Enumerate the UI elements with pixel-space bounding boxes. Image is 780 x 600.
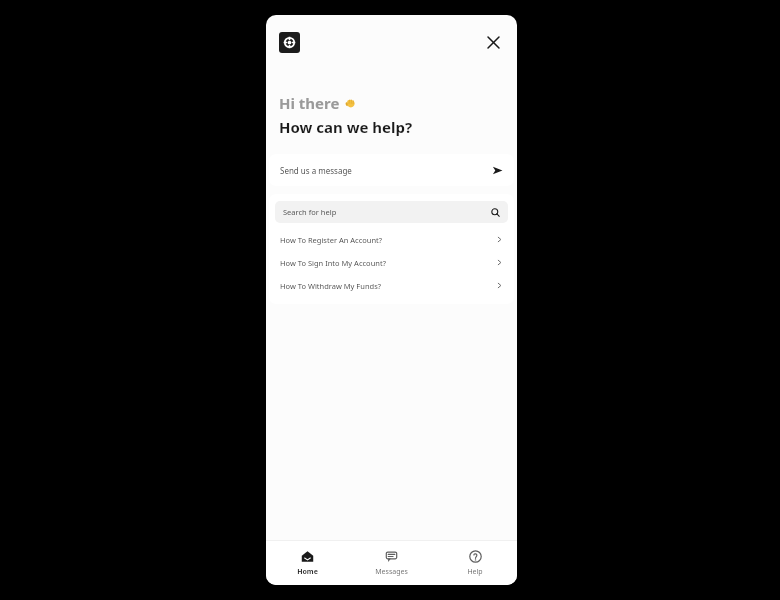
staticText: How can we help? bbox=[279, 117, 413, 137]
staticText: Hi there bbox=[279, 93, 344, 113]
staticText: Search for help bbox=[283, 207, 491, 217]
button[interactable]: Brand logo bbox=[279, 32, 300, 53]
staticText: How To Register An Account? bbox=[280, 235, 496, 245]
button[interactable]: Search for help bbox=[275, 201, 508, 223]
button[interactable]: Messages bbox=[349, 546, 433, 581]
staticText: Help bbox=[467, 567, 483, 577]
button[interactable]: Home bbox=[266, 546, 349, 581]
button[interactable]: How To Withdraw My Funds? bbox=[269, 274, 514, 297]
staticText: Messages bbox=[375, 567, 408, 577]
button[interactable]: Close bbox=[481, 30, 505, 54]
staticText: Send us a message bbox=[280, 165, 492, 176]
button[interactable]: Help bbox=[433, 546, 517, 581]
button[interactable]: How To Sign Into My Account? bbox=[269, 251, 514, 274]
staticText: Home bbox=[297, 567, 318, 577]
button[interactable]: How To Register An Account? bbox=[269, 228, 514, 251]
staticText: How To Sign Into My Account? bbox=[280, 258, 496, 268]
staticText: How To Withdraw My Funds? bbox=[280, 281, 496, 291]
button[interactable]: Send us a message bbox=[269, 154, 514, 186]
